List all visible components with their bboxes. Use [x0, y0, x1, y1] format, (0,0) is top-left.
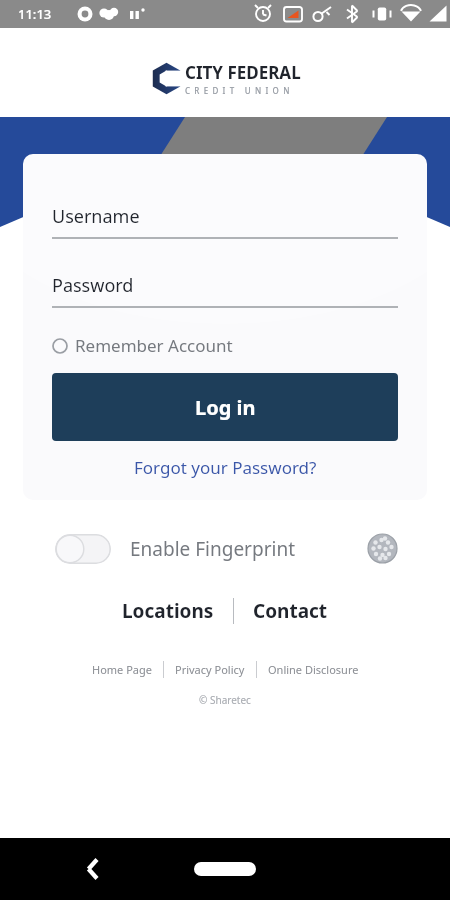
- button[interactable]: Home: [194, 862, 256, 876]
- button[interactable]: Fingerprint: [367, 533, 398, 564]
- button[interactable]: Privacy Policy: [171, 659, 249, 680]
- button[interactable]: Back: [73, 849, 113, 889]
- button[interactable]: Home Page: [88, 659, 156, 680]
- button[interactable]: Contact: [247, 594, 334, 628]
- staticText: Online Disclosure: [268, 662, 359, 677]
- button[interactable]: Online Disclosure: [264, 659, 363, 680]
- staticText: CITY FEDERAL: [185, 61, 301, 84]
- staticText: Remember Account: [75, 334, 233, 357]
- staticText: Log in: [195, 394, 256, 421]
- button[interactable]: Locations: [116, 594, 220, 628]
- staticText: Locations: [122, 598, 214, 624]
- staticText: Username: [52, 204, 140, 229]
- staticText: Home Page: [92, 662, 152, 677]
- staticText: Contact: [253, 598, 328, 624]
- staticText: Password: [52, 273, 134, 298]
- button[interactable]: Enable Fingerprint: [55, 534, 111, 564]
- staticText: Forgot your Password?: [134, 456, 317, 479]
- button[interactable]: Remember Account: [52, 334, 233, 357]
- button[interactable]: Log in: [52, 373, 398, 441]
- staticText: C R E D I T U N I O N: [185, 85, 291, 96]
- button[interactable]: Forgot your Password?: [52, 456, 398, 479]
- staticText: © Sharetec: [0, 693, 450, 707]
- staticText: Enable Fingerprint: [130, 536, 295, 562]
- staticText: Privacy Policy: [175, 662, 245, 677]
- staticText: 11:13: [18, 5, 52, 23]
